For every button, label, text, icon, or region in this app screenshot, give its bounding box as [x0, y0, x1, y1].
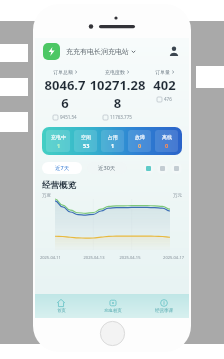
button[interactable]: 离线 [155, 130, 178, 152]
staticText: 1 [57, 142, 61, 149]
staticText: 订单总额 [53, 69, 73, 75]
staticText: 0 [138, 142, 142, 149]
staticText: 476 [164, 96, 172, 102]
button[interactable]: 订单总额 [41, 69, 89, 120]
staticText: 53 [83, 142, 90, 149]
button[interactable]: 首页 [35, 294, 87, 318]
staticText: 订单量 [155, 69, 170, 75]
staticText: 10271.288 [89, 76, 146, 112]
button[interactable]: Home [100, 321, 125, 346]
staticText: 8046.76 [41, 76, 89, 112]
staticText: 近7天 [55, 164, 70, 172]
staticText: 占用 [108, 134, 118, 140]
staticText: 充电度数 [105, 69, 125, 75]
staticText: 充电桩页 [104, 308, 122, 314]
button[interactable]: 空闲 [74, 130, 97, 152]
staticText: 经营概览 [42, 180, 76, 191]
staticText: 充电中 [51, 134, 66, 140]
staticText: 万元 [173, 193, 182, 199]
staticText: 首页 [57, 308, 66, 314]
staticText: 经营季课 [155, 308, 173, 314]
button[interactable]: 近30天 [87, 162, 127, 174]
button[interactable]: 经营季课 [138, 294, 189, 318]
staticText: 2025-04-17 [148, 255, 184, 260]
button[interactable]: 占用 [101, 130, 124, 152]
button[interactable]: Grid view [171, 163, 182, 174]
staticText: 近30天 [98, 164, 116, 172]
button[interactable]: 充电度数 [89, 69, 146, 120]
staticText: 2025-04-15 [112, 255, 148, 260]
button[interactable]: 充电中 [46, 130, 70, 152]
button[interactable]: 近7天 [42, 162, 82, 174]
staticText: 11763.775 [110, 114, 132, 120]
staticText: 离线 [162, 134, 172, 140]
button[interactable]: List view [157, 163, 168, 174]
staticText: 0 [165, 142, 169, 149]
staticText: 1 [111, 142, 115, 149]
staticText: 万度 [42, 193, 51, 199]
staticText: 故障 [135, 134, 145, 140]
button[interactable]: 充充有电长润充电站 [66, 47, 167, 56]
button[interactable]: Account [167, 44, 181, 58]
button[interactable]: 充电桩页 [87, 294, 138, 318]
staticText: 空闲 [81, 134, 91, 140]
staticText: 2025-04-13 [76, 255, 112, 260]
staticText: 402 [153, 76, 176, 94]
button[interactable]: Chart view [143, 163, 154, 174]
button[interactable]: 订单量 [146, 69, 183, 102]
staticText: 充充有电长润充电站 [66, 47, 129, 56]
staticText: 9451.54 [60, 114, 77, 120]
button[interactable]: 故障 [128, 130, 151, 152]
button[interactable]: Charging station [43, 43, 60, 60]
staticText: 2025-04-11 [40, 255, 76, 260]
